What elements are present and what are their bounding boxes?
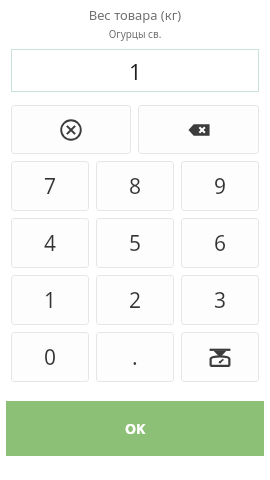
button[interactable]: 2	[96, 275, 174, 325]
button[interactable]: OK	[6, 401, 264, 456]
button[interactable]: 6	[181, 218, 259, 268]
staticText: 0	[44, 343, 57, 372]
staticText: 1	[44, 286, 57, 315]
button[interactable]: Clear	[11, 105, 131, 154]
staticText: 4	[44, 229, 57, 258]
button[interactable]: 9	[181, 161, 259, 211]
staticText: 9	[214, 172, 227, 201]
button[interactable]: 1	[11, 49, 259, 92]
staticText: .	[132, 343, 138, 372]
button[interactable]: .	[96, 332, 174, 382]
button[interactable]: 0	[11, 332, 89, 382]
button[interactable]: 7	[11, 161, 89, 211]
button[interactable]: 8	[96, 161, 174, 211]
button[interactable]: Weigh on scale	[181, 332, 259, 382]
staticText: 2	[129, 286, 142, 315]
button[interactable]: 3	[181, 275, 259, 325]
staticText: 6	[214, 229, 227, 258]
staticText: Вес товара (кг)	[0, 6, 270, 24]
staticText: 5	[129, 229, 142, 258]
staticText: 8	[129, 172, 142, 201]
button[interactable]: Backspace	[138, 105, 259, 154]
staticText: 7	[44, 172, 57, 201]
staticText: Огурцы св.	[0, 27, 270, 41]
staticText: 3	[214, 286, 227, 315]
staticText: OK	[125, 419, 146, 438]
button[interactable]: 1	[11, 275, 89, 325]
button[interactable]: 5	[96, 218, 174, 268]
staticText: 1	[129, 56, 142, 86]
button[interactable]: 4	[11, 218, 89, 268]
